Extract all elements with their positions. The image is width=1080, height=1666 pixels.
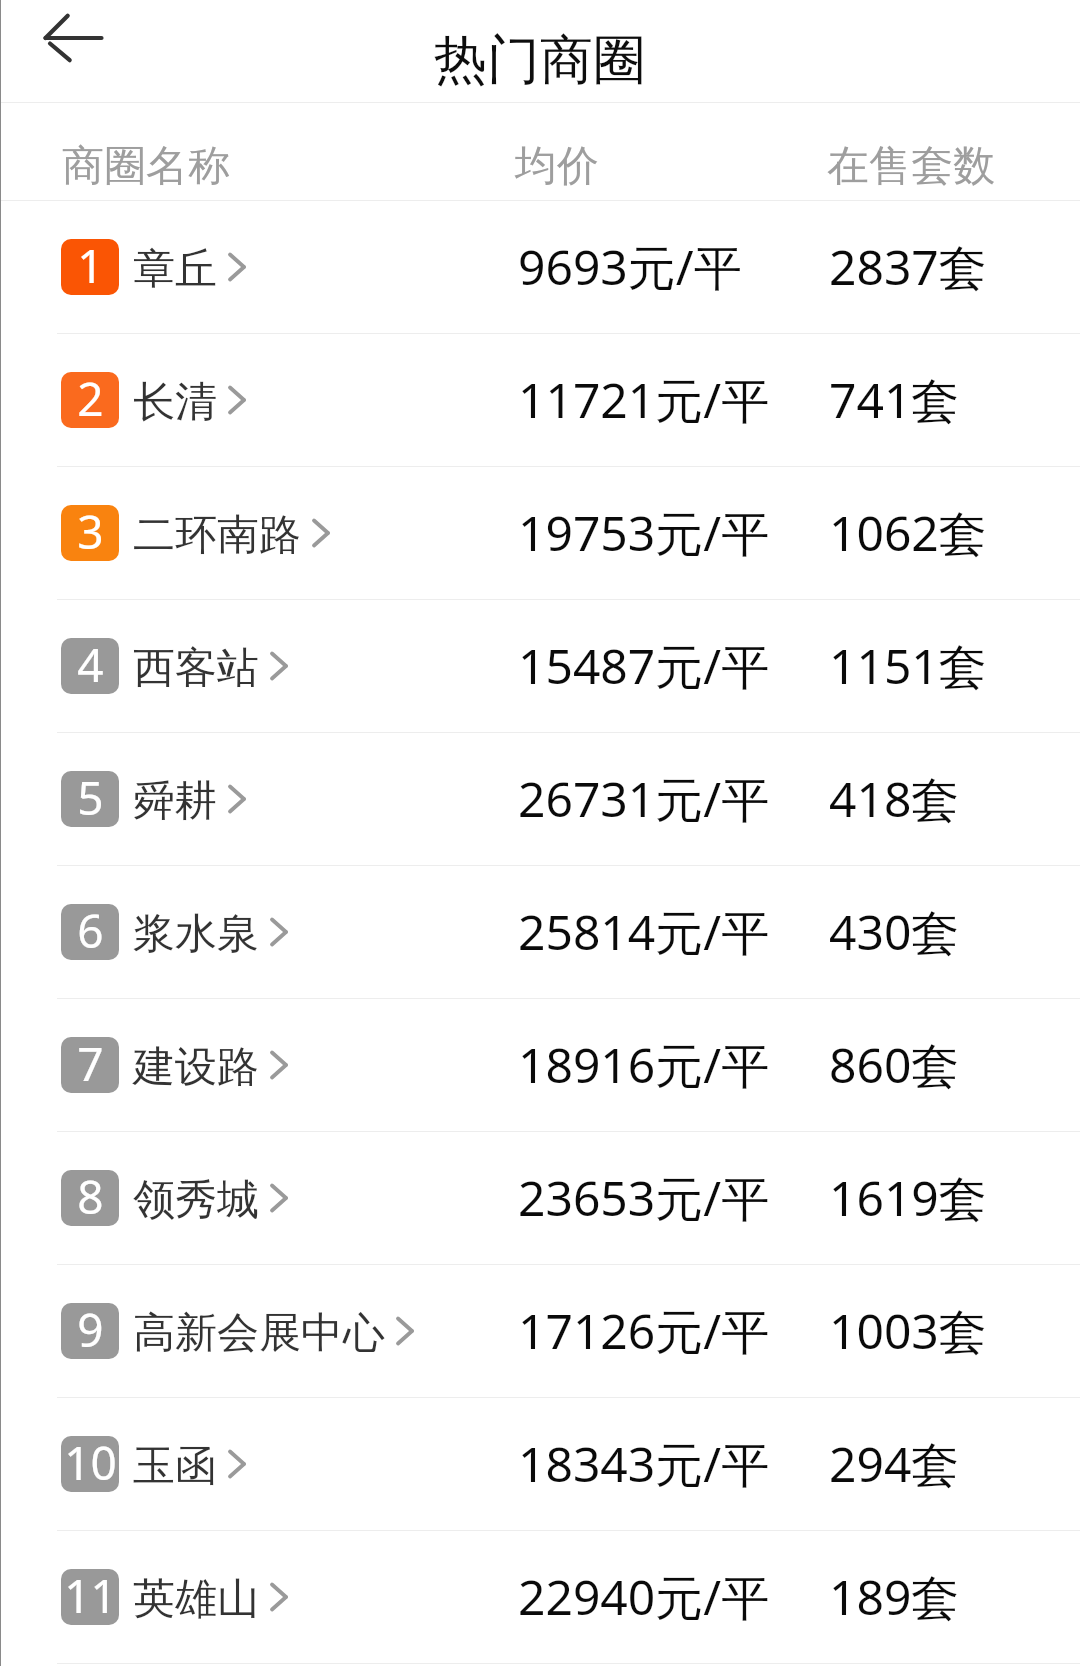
staticText: 11721元/平 — [518, 367, 770, 433]
staticText: 均价 — [515, 140, 599, 193]
button[interactable]: 6 — [0, 866, 1080, 998]
staticText: 9693元/平 — [518, 234, 742, 300]
staticText: 1003套 — [829, 1298, 987, 1364]
staticText: 10 — [64, 1436, 117, 1487]
button[interactable]: Back — [24, 0, 120, 86]
staticText: 22940元/平 — [518, 1564, 770, 1630]
staticText: 商圈名称 — [62, 140, 230, 193]
staticText: 9 — [77, 1303, 104, 1354]
staticText: 浆水泉 — [133, 908, 259, 961]
staticText: 860套 — [829, 1032, 960, 1098]
staticText: 8 — [77, 1170, 104, 1221]
button[interactable]: 10 — [0, 1398, 1080, 1530]
staticText: 1 — [77, 239, 104, 290]
staticText: 26731元/平 — [518, 766, 770, 832]
staticText: 17126元/平 — [518, 1298, 770, 1364]
staticText: 294套 — [829, 1431, 960, 1497]
staticText: 高新会展中心 — [133, 1307, 385, 1360]
button[interactable]: 2 — [0, 334, 1080, 466]
staticText: 15487元/平 — [518, 633, 770, 699]
staticText: 430套 — [829, 899, 960, 965]
staticText: 2837套 — [829, 234, 987, 300]
button[interactable]: 5 — [0, 733, 1080, 865]
staticText: 418套 — [829, 766, 960, 832]
staticText: 6 — [77, 904, 104, 955]
staticText: 2 — [77, 372, 104, 423]
staticText: 玉函 — [133, 1440, 217, 1493]
button[interactable]: 8 — [0, 1132, 1080, 1264]
staticText: 1151套 — [829, 633, 987, 699]
staticText: 7 — [77, 1037, 104, 1088]
staticText: 11 — [64, 1569, 117, 1620]
staticText: 5 — [77, 771, 104, 822]
button[interactable]: 11 — [0, 1531, 1080, 1663]
button[interactable]: 4 — [0, 600, 1080, 732]
button[interactable]: 3 — [0, 467, 1080, 599]
staticText: 1062套 — [829, 500, 987, 566]
staticText: 英雄山 — [133, 1573, 259, 1626]
staticText: 长清 — [133, 376, 217, 429]
staticText: 建设路 — [133, 1041, 259, 1094]
staticText: 西客站 — [133, 642, 259, 695]
staticText: 章丘 — [133, 243, 217, 296]
button[interactable]: 1 — [0, 201, 1080, 333]
staticText: 舜耕 — [133, 775, 217, 828]
staticText: 189套 — [829, 1564, 960, 1630]
button[interactable]: 9 — [0, 1265, 1080, 1397]
button[interactable]: 7 — [0, 999, 1080, 1131]
staticText: 18916元/平 — [518, 1032, 770, 1098]
staticText: 23653元/平 — [518, 1165, 770, 1231]
staticText: 25814元/平 — [518, 899, 770, 965]
staticText: 741套 — [829, 367, 960, 433]
staticText: 19753元/平 — [518, 500, 770, 566]
staticText: 4 — [77, 638, 104, 689]
staticText: 二环南路 — [133, 509, 301, 562]
staticText: 领秀城 — [133, 1174, 259, 1227]
staticText: 在售套数 — [827, 140, 995, 193]
staticText: 1619套 — [829, 1165, 987, 1231]
staticText: 3 — [77, 505, 104, 556]
staticText: 18343元/平 — [518, 1431, 770, 1497]
staticText: 热门商圈 — [434, 27, 646, 94]
